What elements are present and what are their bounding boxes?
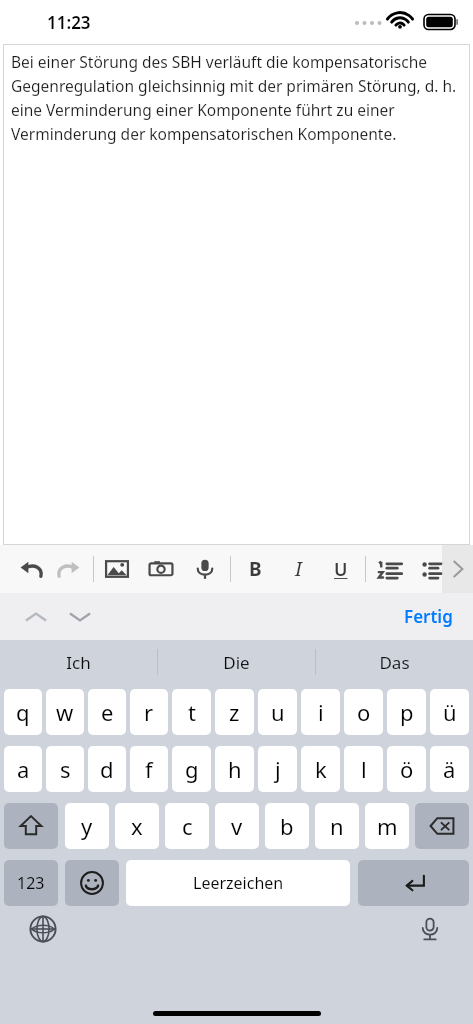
button[interactable]: More (442, 545, 473, 593)
button[interactable]: o (344, 689, 383, 735)
staticText: n (330, 811, 344, 841)
staticText: z (229, 697, 240, 727)
button[interactable]: w (46, 689, 84, 735)
button[interactable]: u (258, 689, 297, 735)
staticText: Die (223, 651, 250, 674)
button[interactable]: x (115, 803, 159, 849)
staticText: w (56, 697, 74, 727)
button[interactable]: B (242, 556, 268, 582)
staticText: Ich (66, 651, 91, 674)
button[interactable]: Previous field (20, 601, 52, 633)
button[interactable]: f (130, 746, 168, 792)
button[interactable]: i (301, 689, 340, 735)
button[interactable]: Backspace (415, 803, 469, 849)
staticText: f (145, 754, 153, 784)
staticText: Fertig (404, 605, 453, 628)
staticText: p (400, 697, 414, 727)
staticText: d (100, 754, 114, 784)
staticText: ä (443, 754, 456, 784)
button[interactable]: Undo (18, 556, 44, 582)
button[interactable]: Return (358, 860, 469, 906)
button[interactable]: Das (316, 640, 473, 684)
button[interactable]: l (344, 746, 383, 792)
button[interactable]: Camera (148, 556, 174, 582)
staticText: q (16, 697, 30, 727)
button[interactable]: b (265, 803, 309, 849)
staticText: I (295, 556, 302, 582)
button[interactable]: U (328, 556, 354, 582)
button[interactable]: g (172, 746, 211, 792)
staticText: g (185, 754, 199, 784)
button[interactable]: ä (430, 746, 469, 792)
staticText: o (357, 697, 371, 727)
button[interactable]: n (315, 803, 359, 849)
button[interactable]: Next field (64, 601, 96, 633)
staticText: a (17, 754, 30, 784)
staticText: y (81, 811, 93, 841)
button[interactable]: t (172, 689, 211, 735)
button[interactable]: Die (158, 640, 315, 684)
staticText: h (228, 754, 242, 784)
staticText: t (188, 697, 196, 727)
staticText: Das (379, 651, 410, 674)
button[interactable]: Bulleted list (422, 556, 442, 582)
staticText: e (101, 697, 114, 727)
staticText: i (318, 697, 324, 727)
button[interactable]: j (258, 746, 297, 792)
staticText: 123 (17, 872, 45, 894)
button[interactable]: k (301, 746, 340, 792)
staticText: B (249, 556, 262, 582)
button[interactable]: Numbered list (377, 556, 403, 582)
button[interactable]: r (130, 689, 168, 735)
button[interactable]: Change keyboard language (26, 912, 60, 946)
button[interactable]: q (4, 689, 42, 735)
staticText: U (334, 557, 348, 582)
button[interactable]: s (46, 746, 84, 792)
button[interactable]: z (215, 689, 254, 735)
staticText: l (361, 754, 367, 784)
staticText: s (60, 754, 71, 784)
button[interactable]: Emoji (65, 860, 119, 906)
button[interactable]: m (365, 803, 409, 849)
button[interactable]: Dictation (413, 912, 447, 946)
button[interactable]: a (4, 746, 42, 792)
staticText: b (280, 811, 294, 841)
button[interactable]: c (165, 803, 209, 849)
button[interactable]: d (88, 746, 126, 792)
button[interactable]: Shift (4, 803, 58, 849)
button[interactable]: I (285, 556, 311, 582)
button[interactable]: v (215, 803, 259, 849)
button[interactable]: Ich (0, 640, 157, 684)
staticText: u (271, 697, 285, 727)
button[interactable]: y (65, 803, 109, 849)
staticText: Bei einer Störung des SBH verläuft die k… (11, 51, 464, 144)
button[interactable]: p (387, 689, 426, 735)
button[interactable]: h (215, 746, 254, 792)
button[interactable]: Fertig (396, 599, 461, 634)
button[interactable]: Dictate (192, 556, 218, 582)
button[interactable]: e (88, 689, 126, 735)
staticText: ö (400, 754, 414, 784)
button[interactable]: ü (430, 689, 469, 735)
button[interactable]: Insert image (104, 556, 130, 582)
staticText: c (182, 811, 193, 841)
button[interactable]: Redo (56, 556, 82, 582)
staticText: ü (443, 697, 457, 727)
staticText: x (131, 811, 143, 841)
staticText: m (377, 811, 398, 841)
staticText: Leerzeichen (193, 872, 284, 894)
staticText: k (315, 754, 327, 784)
button[interactable]: Leerzeichen (126, 860, 350, 906)
button[interactable]: ö (387, 746, 426, 792)
staticText: 11:23 (47, 11, 91, 34)
staticText: j (275, 754, 281, 784)
staticText: r (144, 697, 154, 727)
button[interactable]: 123 (4, 860, 58, 906)
staticText: v (231, 811, 243, 841)
